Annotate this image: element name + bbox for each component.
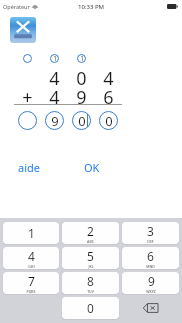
staticText: 0 [76, 66, 87, 85]
button[interactable]: 6 [122, 247, 179, 269]
staticText: Opérateur [3, 3, 30, 10]
button[interactable]: 1 [3, 222, 59, 244]
staticText: 4 [49, 85, 60, 104]
staticText: TUV [87, 289, 94, 294]
staticText: 1 [53, 54, 57, 63]
staticText: 3 [147, 223, 154, 239]
staticText: 4 [49, 66, 60, 85]
button[interactable]: 8 [62, 272, 119, 294]
staticText: 8 [87, 273, 94, 289]
staticText: ABC [87, 239, 94, 244]
button[interactable]: Chiffre de la réponse [68, 109, 95, 131]
button[interactable]: aide [18, 160, 40, 175]
button[interactable]: Ouvrir [10, 17, 36, 43]
staticText: 6 [147, 248, 154, 264]
button[interactable]: Retenue [14, 52, 41, 64]
staticText: 9 [51, 112, 59, 130]
button[interactable]: 9 [122, 272, 179, 294]
button[interactable]: 0 [62, 297, 119, 319]
staticText: 9 [148, 273, 155, 289]
button[interactable]: 5 [62, 247, 119, 269]
button[interactable]: OK [84, 160, 100, 175]
staticText: 9 [76, 85, 87, 104]
button[interactable]: Chiffre de la réponse [14, 109, 41, 131]
staticText: PQRS [26, 289, 36, 294]
button[interactable]: 2 [62, 222, 119, 244]
staticText: WXYZ [146, 289, 156, 294]
staticText: + [22, 85, 33, 104]
button[interactable]: 4 [3, 247, 59, 269]
staticText: 0 [87, 300, 94, 316]
staticText: 0 [78, 112, 86, 130]
staticText: 0 [105, 112, 113, 130]
staticText: 10:33 PM [78, 3, 105, 11]
staticText: 6 [103, 85, 114, 104]
staticText: aide [18, 160, 40, 175]
staticText: MNO [146, 264, 155, 269]
button[interactable]: Chiffre de la réponse [41, 109, 68, 131]
button[interactable]: Retenue [41, 52, 68, 64]
staticText: 5 [87, 248, 94, 264]
button[interactable]: 3 [122, 222, 179, 244]
staticText: DEF [147, 239, 154, 244]
button[interactable]: Chiffre de la réponse [95, 109, 122, 131]
button[interactable]: Retenue [68, 52, 95, 64]
staticText: JKL [88, 264, 94, 269]
button[interactable]: Supprimer [122, 297, 179, 319]
staticText: OK [84, 160, 100, 175]
button[interactable]: 7 [3, 272, 59, 294]
staticText: 4 [28, 248, 35, 264]
staticText: 1 [28, 225, 35, 241]
staticText: 1 [80, 54, 84, 63]
staticText: 7 [28, 273, 35, 289]
staticText: 4 [103, 66, 114, 85]
staticText: 2 [87, 223, 94, 239]
staticText: GHI [28, 264, 35, 269]
